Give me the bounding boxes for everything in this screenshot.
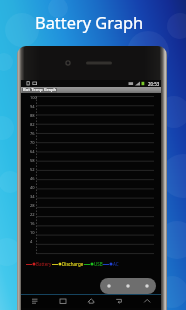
button[interactable]: Zoom in — [137, 278, 156, 294]
staticText: 28 — [30, 203, 35, 208]
staticText: 64 — [30, 149, 35, 154]
button[interactable]: Show keyboard — [133, 294, 161, 308]
button[interactable]: Bat Temp Graph — [21, 87, 161, 93]
staticText: 40 — [30, 185, 35, 190]
staticText: 46 — [30, 176, 35, 181]
staticText: 100 — [30, 95, 37, 100]
staticText: 16 — [30, 221, 35, 226]
staticText: 88 — [30, 113, 35, 118]
button[interactable]: Zoom out — [100, 278, 118, 294]
button[interactable]: Menu — [21, 294, 49, 308]
staticText: Discharge — [62, 261, 84, 267]
button[interactable]: Home — [77, 294, 105, 308]
staticText: 82 — [30, 122, 35, 127]
button[interactable]: Reset zoom — [118, 278, 137, 294]
staticText: Bat Temp Graph — [23, 87, 57, 93]
staticText: Battery Graph — [35, 11, 144, 33]
button[interactable]: Recents — [49, 294, 77, 308]
staticText: 20:53 — [148, 81, 160, 87]
staticText: 10 — [30, 230, 35, 235]
staticText: 70 — [30, 140, 35, 145]
staticText: AC — [113, 261, 119, 267]
button[interactable]: Back — [105, 294, 133, 308]
staticText: 34 — [30, 194, 35, 199]
staticText: 52 — [30, 167, 35, 172]
staticText: 58 — [30, 158, 35, 163]
staticText: USB — [94, 261, 103, 267]
staticText: Battery — [36, 261, 52, 267]
staticText: 22 — [30, 212, 35, 217]
staticText: 94 — [30, 104, 35, 109]
staticText: 4 — [30, 239, 33, 244]
staticText: 76 — [30, 131, 35, 136]
